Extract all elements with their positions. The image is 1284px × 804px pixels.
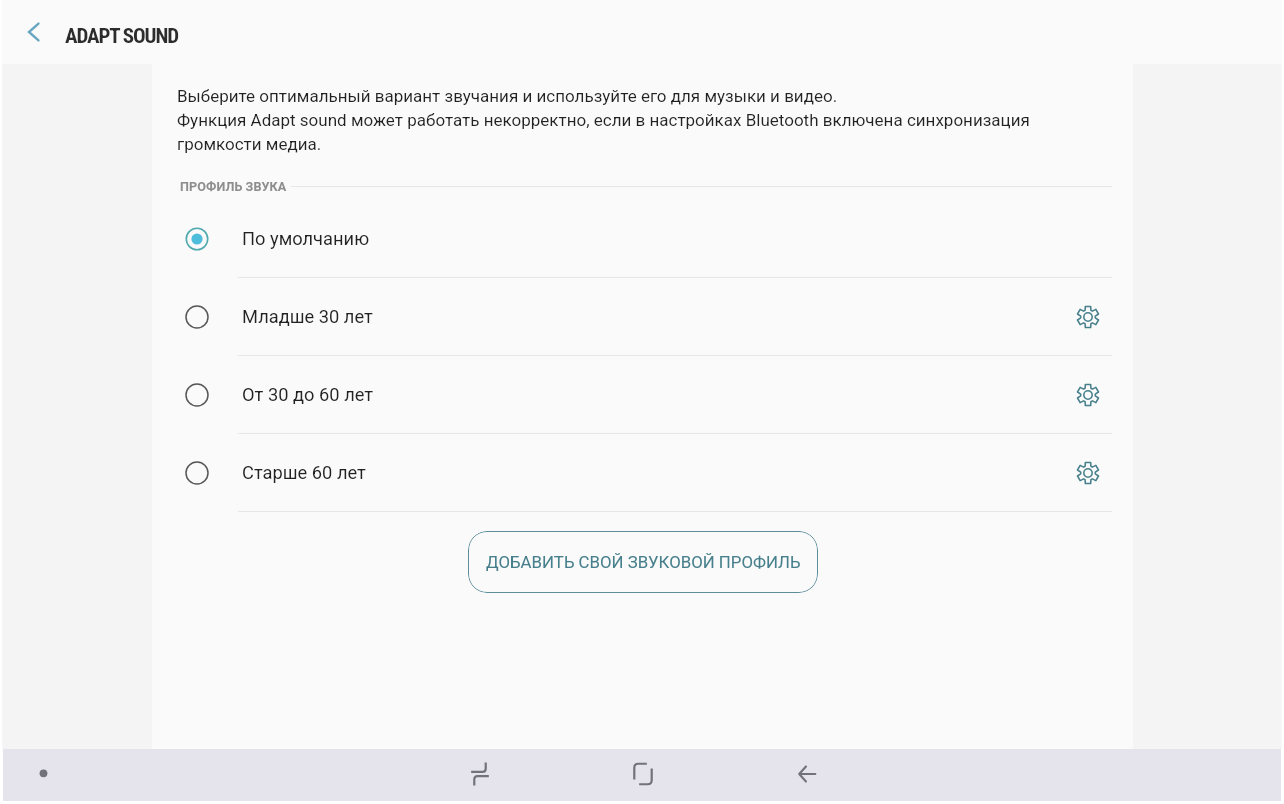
button[interactable]: По умолчанию (152, 200, 1133, 277)
button[interactable]: Recents (450, 749, 510, 801)
staticText: По умолчанию (242, 228, 370, 249)
button[interactable]: Back (0, 0, 65, 64)
staticText: ПРОФИЛЬ ЗВУКА (180, 179, 287, 194)
button[interactable]: Младше 30 лет (152, 278, 1133, 355)
staticText: ДОБАВИТЬ СВОЙ ЗВУКОВОЙ ПРОФИЛЬ (486, 552, 801, 572)
staticText: От 30 до 60 лет (242, 384, 374, 405)
button[interactable]: Settings (1043, 278, 1133, 355)
staticText: ADAPT SOUND (65, 24, 178, 49)
button[interactable]: Home (613, 749, 673, 801)
button[interactable]: Settings (1043, 356, 1133, 433)
button[interactable]: От 30 до 60 лет (152, 356, 1133, 433)
staticText: Младше 30 лет (242, 306, 373, 327)
button[interactable]: Settings (1043, 434, 1133, 511)
staticText: Старше 60 лет (242, 462, 366, 483)
button[interactable]: Старше 60 лет (152, 434, 1133, 511)
button[interactable]: ДОБАВИТЬ СВОЙ ЗВУКОВОЙ ПРОФИЛЬ (468, 531, 818, 593)
button[interactable]: Back (777, 749, 837, 801)
staticText: Выберите оптимальный вариант звучания и … (177, 86, 1030, 154)
